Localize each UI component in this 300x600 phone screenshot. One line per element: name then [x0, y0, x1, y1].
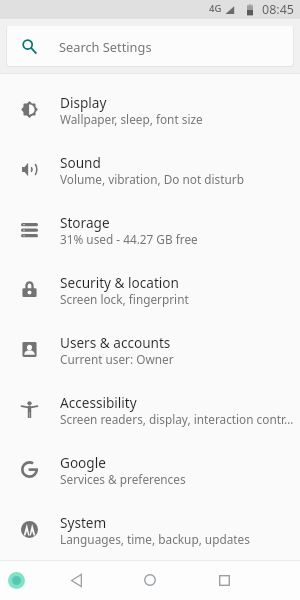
staticText: Display: [60, 93, 107, 112]
button[interactable]: Accessibility: [0, 379, 300, 439]
button[interactable]: Security & location: [0, 259, 300, 319]
staticText: Services & preferences: [60, 471, 186, 487]
button[interactable]: Search Settings: [7, 26, 293, 66]
staticText: Screen readers, display, interaction con…: [60, 411, 294, 427]
staticText: Accessibility: [60, 393, 137, 412]
button[interactable]: Sound: [0, 139, 300, 199]
staticText: 31% used - 44.27 GB free: [60, 231, 198, 247]
staticText: Storage: [60, 213, 110, 232]
staticText: System: [60, 513, 107, 532]
staticText: Current user: Owner: [60, 351, 174, 367]
button[interactable]: Users & accounts: [0, 319, 300, 379]
staticText: Google: [60, 453, 106, 472]
button[interactable]: Display: [0, 79, 300, 139]
button[interactable]: Assistant: [8, 572, 25, 589]
staticText: Screen lock, fingerprint: [60, 291, 189, 307]
staticText: 4G: [209, 2, 222, 15]
staticText: Volume, vibration, Do not disturb: [60, 171, 244, 187]
staticText: Sound: [60, 153, 101, 172]
staticText: Search Settings: [59, 38, 152, 55]
button[interactable]: Home: [134, 564, 166, 596]
button[interactable]: Storage: [0, 199, 300, 259]
button[interactable]: Back: [60, 564, 92, 596]
button[interactable]: System: [0, 499, 300, 559]
button[interactable]: Recents: [208, 564, 240, 596]
staticText: 08:45: [262, 1, 294, 18]
staticText: Security & location: [60, 273, 179, 292]
staticText: Languages, time, backup, updates: [60, 531, 250, 547]
staticText: Wallpaper, sleep, font size: [60, 111, 203, 127]
staticText: Users & accounts: [60, 333, 171, 352]
button[interactable]: Google: [0, 439, 300, 499]
